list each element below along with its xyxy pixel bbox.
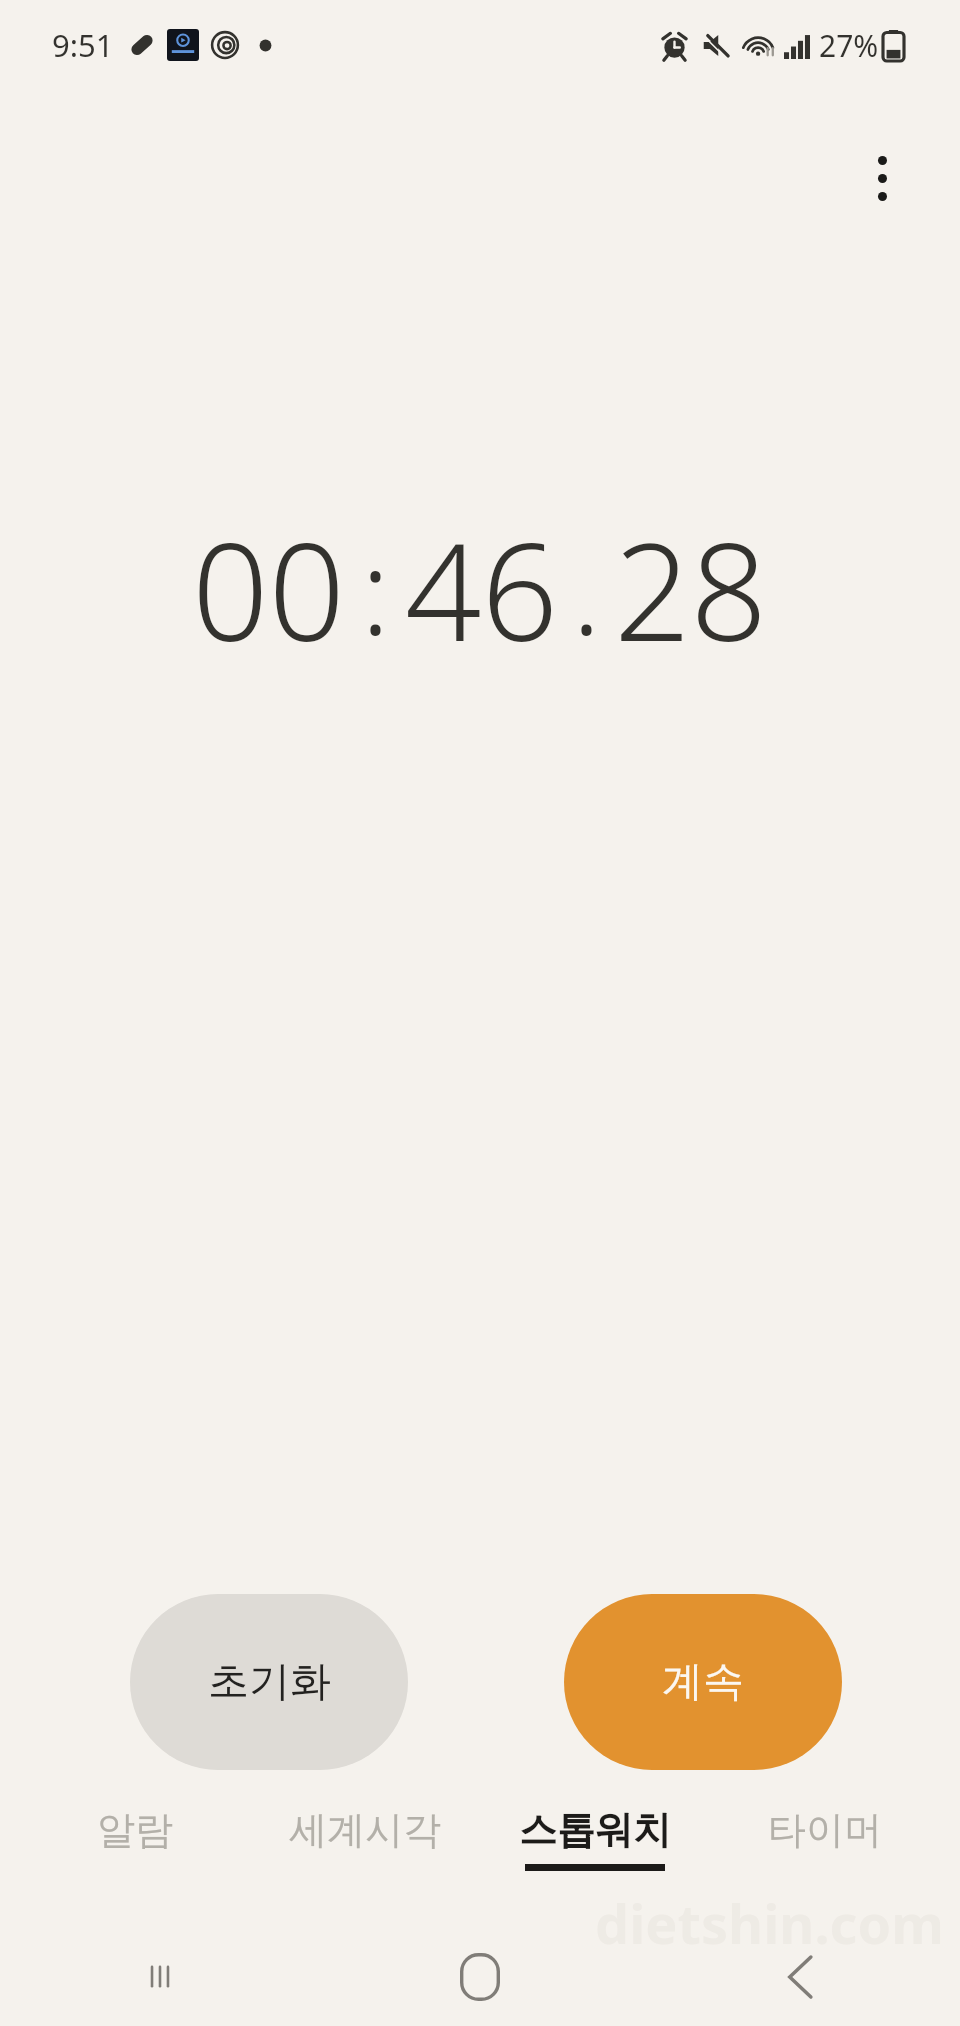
staticText: 9:51 (52, 24, 114, 66)
button[interactable]: 알람 (20, 1798, 250, 1862)
staticText: 28 (614, 498, 768, 681)
staticText: 27% (819, 25, 879, 66)
button[interactable]: More options (840, 136, 924, 220)
staticText: 00 (192, 498, 346, 681)
button[interactable]: Back (640, 1928, 960, 2026)
staticText: 타이머 (768, 1806, 882, 1854)
staticText: 알람 (97, 1806, 173, 1854)
staticText: 세계시각 (289, 1806, 441, 1854)
button[interactable]: 타이머 (710, 1798, 940, 1862)
staticText: 스톱워치 (519, 1806, 671, 1854)
button[interactable]: Home (320, 1928, 640, 2026)
staticText: 46 (405, 498, 559, 681)
button[interactable]: 초기화 (130, 1594, 408, 1770)
staticText: 초기화 (208, 1656, 331, 1708)
staticText: 계속 (662, 1656, 744, 1708)
staticText: . (572, 509, 601, 670)
button[interactable]: 계속 (564, 1594, 842, 1770)
button[interactable]: Recent apps (0, 1928, 320, 2026)
button[interactable]: 세계시각 (250, 1798, 480, 1862)
staticText: dietshin.com (595, 1886, 944, 1960)
staticText: : (361, 509, 390, 670)
button[interactable]: 스톱워치 (480, 1798, 710, 1879)
